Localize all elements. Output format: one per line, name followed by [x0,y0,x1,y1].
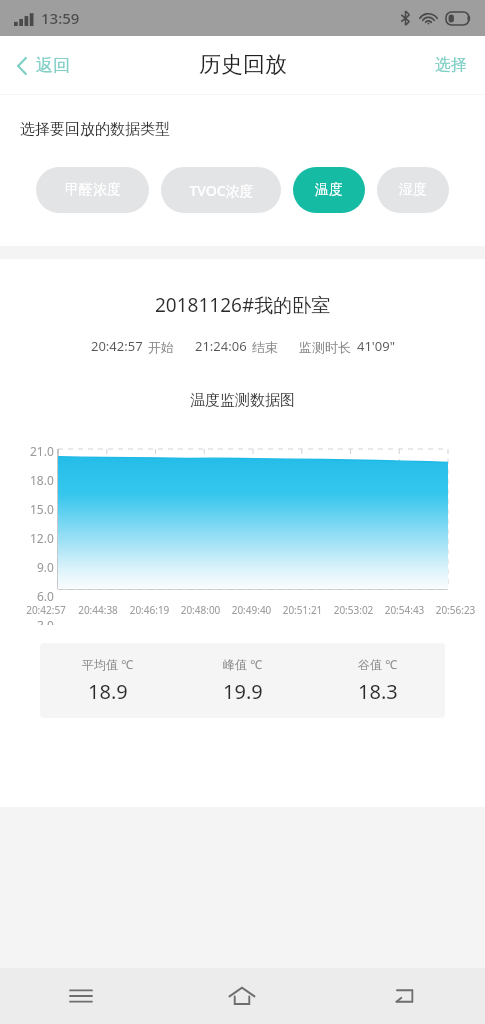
staticText: 3.0 [37,617,54,625]
staticText: 6.0 [37,588,54,604]
staticText: 历史回放 [199,51,287,79]
staticText: 选择要回放的数据类型 [20,120,170,139]
staticText: 监测时长 [299,339,351,355]
staticText: 20:48:00 [175,603,226,617]
button[interactable]: Back [323,968,485,1024]
staticText: 9.0 [37,559,54,575]
button[interactable]: 甲醛浓度 [36,167,149,213]
staticText: 20:56:23 [430,603,481,617]
button[interactable]: 湿度 [377,167,449,213]
staticText: 温度监测数据图 [190,391,295,410]
staticText: 结束 [252,339,278,355]
staticText: 谷值 ℃ [358,656,398,672]
staticText: 20:44:38 [72,603,124,617]
staticText: 15.0 [30,501,54,517]
staticText: 20:53:02 [328,603,379,617]
staticText: 21:24:06 [195,337,247,355]
staticText: 20:49:40 [226,603,277,617]
button[interactable]: 返回 [0,45,84,86]
staticText: 20:54:43 [379,603,430,617]
button[interactable]: Menu [0,968,161,1024]
staticText: 20:42:57 [91,337,143,355]
button[interactable]: 选择 [417,43,485,87]
staticText: 20181126#我的卧室 [155,292,331,318]
staticText: 开始 [148,339,174,355]
staticText: 选择 [435,55,467,75]
staticText: 20:46:19 [124,603,175,617]
staticText: 41'09" [357,337,395,355]
button[interactable]: 温度 [293,167,365,213]
staticText: TVOC浓度 [189,181,254,200]
button[interactable]: TVOC浓度 [161,167,281,213]
staticText: 21.0 [30,443,54,459]
staticText: 峰值 ℃ [223,656,263,672]
staticText: 19.9 [223,678,263,705]
staticText: 18.3 [358,678,398,705]
staticText: 温度 [315,181,343,199]
staticText: 甲醛浓度 [65,181,121,199]
staticText: 13:59 [41,8,80,28]
button[interactable]: Home [161,968,323,1024]
staticText: 20:42:57 [20,603,72,617]
staticText: 返回 [36,55,70,76]
staticText: 18.9 [88,678,128,705]
staticText: 平均值 ℃ [82,656,134,672]
staticText: 20:51:21 [277,603,328,617]
staticText: 18.0 [30,472,54,488]
staticText: 湿度 [399,181,427,199]
staticText: 12.0 [30,530,54,546]
